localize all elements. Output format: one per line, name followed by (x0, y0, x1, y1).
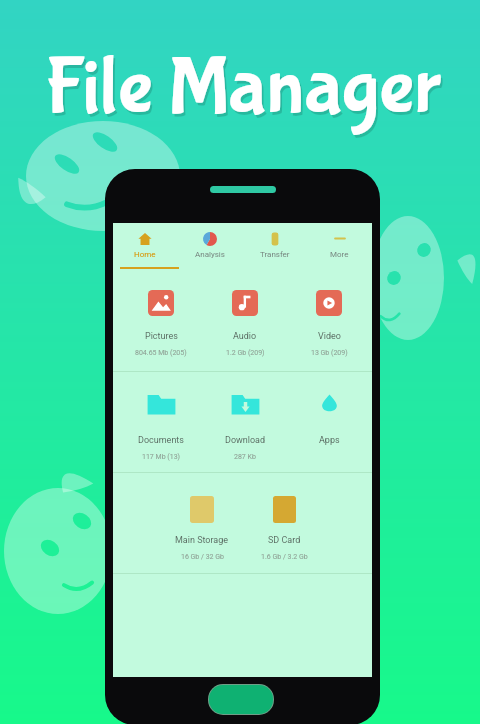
staticText: Apps (319, 435, 340, 446)
staticText: Pictures (145, 331, 178, 342)
staticText: 16 Gb / 32 Gb (181, 553, 224, 561)
staticText: Download (225, 435, 266, 446)
staticText: Documents (138, 435, 184, 446)
button[interactable]: Documents (119, 372, 203, 471)
staticText: File Manager (3, 40, 480, 135)
button[interactable]: Audio (203, 272, 287, 371)
staticText: Audio (233, 331, 257, 342)
button[interactable]: More (307, 223, 372, 272)
staticText: SD Card (268, 535, 301, 546)
staticText: 1.2 Gb (209) (226, 349, 265, 357)
button[interactable]: Main Storage (160, 473, 244, 572)
staticText: Analysis (195, 250, 225, 259)
staticText: Home (134, 250, 156, 259)
button[interactable]: Apps (287, 372, 371, 471)
staticText: Transfer (260, 250, 290, 259)
button[interactable]: Home button (208, 684, 274, 715)
staticText: File Manager (5, 43, 480, 138)
staticText: 13 Gb (209) (311, 349, 348, 357)
button[interactable]: Analysis (177, 223, 242, 272)
staticText: Video (318, 331, 341, 342)
staticText: 287 Kb (234, 453, 256, 461)
button[interactable]: SD Card (242, 473, 326, 572)
staticText: 1.6 Gb / 3.2 Gb (261, 553, 308, 561)
staticText: Main Storage (175, 535, 229, 546)
button[interactable]: Home (113, 223, 177, 272)
staticText: 804.65 Mb (205) (135, 349, 187, 357)
button[interactable]: Transfer (242, 223, 307, 272)
button[interactable]: Download (203, 372, 287, 471)
staticText: More (330, 250, 349, 259)
button[interactable]: Video (287, 272, 371, 371)
button[interactable]: Pictures (119, 272, 203, 371)
staticText: 117 Mb (13) (142, 453, 181, 461)
